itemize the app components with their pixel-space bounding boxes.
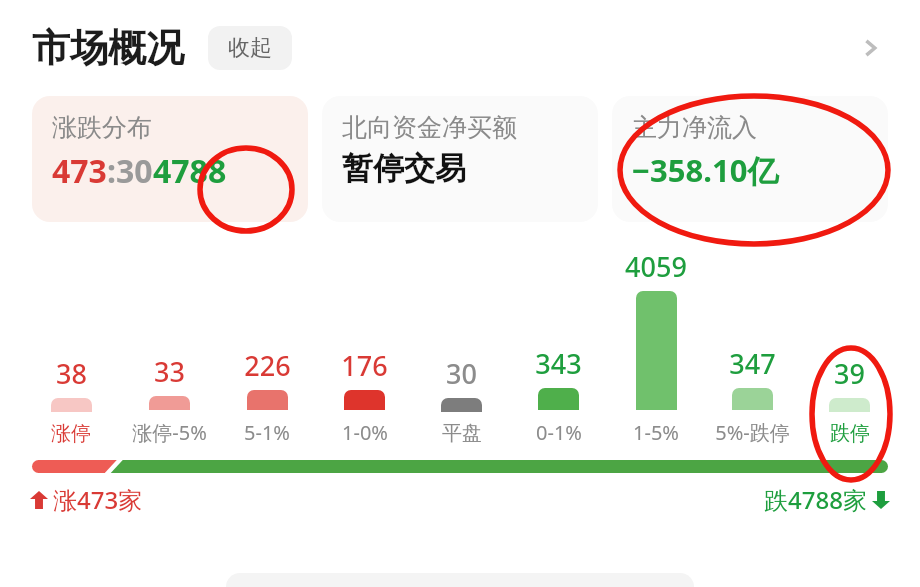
- staticText: 38: [56, 355, 87, 392]
- staticText: :30: [107, 149, 153, 193]
- button[interactable]: 涨跌分布: [32, 96, 308, 222]
- staticText: 176: [341, 347, 388, 384]
- staticText: 市场概况: [32, 24, 184, 72]
- staticText: 涨跌分布: [52, 112, 152, 143]
- staticText: 收起: [228, 34, 272, 62]
- button[interactable]: 主力净流入: [612, 96, 888, 222]
- button[interactable]: 北向资金净买额: [322, 96, 598, 222]
- staticText: 39: [834, 355, 865, 392]
- staticText: 涨停: [51, 421, 91, 446]
- staticText: 30: [446, 355, 477, 392]
- staticText: 平盘: [442, 421, 482, 446]
- staticText: 暂停交易: [342, 149, 466, 188]
- staticText: 473: [52, 149, 107, 193]
- staticText: 5%-跌停: [715, 419, 790, 446]
- staticText: 跌停: [830, 421, 870, 446]
- staticText: 1-5%: [633, 419, 679, 446]
- staticText: 5-1%: [244, 419, 290, 446]
- staticText: 涨473家: [53, 483, 143, 516]
- staticText: 跌4788家: [764, 483, 867, 516]
- staticText: 33: [154, 353, 185, 390]
- staticText: 北向资金净买额: [342, 112, 517, 143]
- staticText: 涨停-5%: [132, 419, 207, 446]
- staticText: −358.10亿: [632, 149, 779, 191]
- staticText: 4059: [625, 248, 687, 285]
- staticText: 0-1%: [536, 419, 582, 446]
- staticText: 主力净流入: [632, 112, 757, 143]
- staticText: 4788: [153, 149, 227, 193]
- staticText: 1-0%: [342, 419, 388, 446]
- staticText: 347: [729, 345, 776, 382]
- staticText: 343: [535, 345, 582, 382]
- button[interactable]: 收起: [208, 26, 292, 70]
- button[interactable]: More: [846, 24, 894, 72]
- staticText: 226: [244, 347, 291, 384]
